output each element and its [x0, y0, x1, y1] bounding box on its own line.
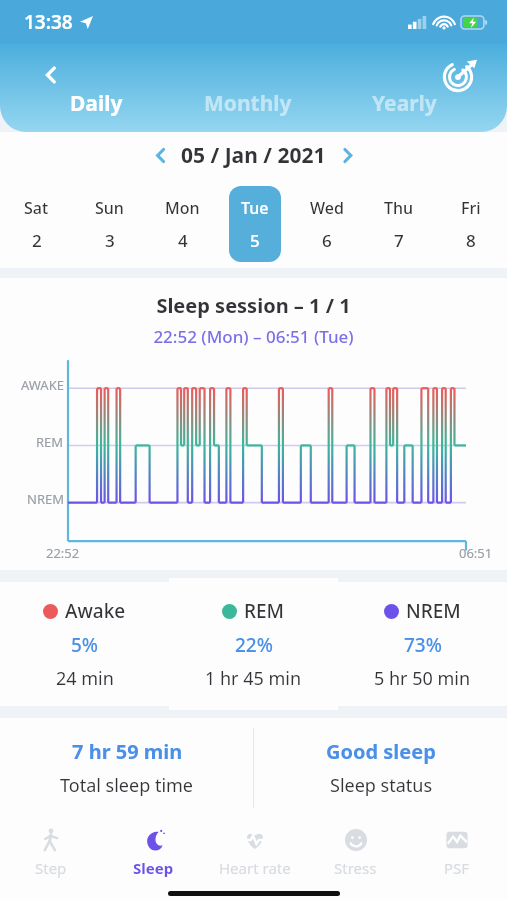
staticText: 8: [466, 229, 476, 252]
staticText: 22:52 (Mon) – 06:51 (Tue): [0, 325, 507, 348]
staticText: Tue: [241, 197, 269, 219]
staticText: 13:38: [24, 9, 73, 35]
button[interactable]: Stress: [305, 818, 406, 886]
staticText: 7 hr 59 min: [72, 738, 183, 765]
staticText: PSF: [444, 858, 470, 878]
staticText: Fri: [461, 197, 481, 219]
button[interactable]: Next day: [332, 140, 362, 170]
button[interactable]: Mon: [156, 186, 209, 262]
button[interactable]: Tue: [229, 186, 281, 262]
staticText: 06:51: [459, 544, 493, 562]
staticText: 6: [322, 229, 332, 252]
staticText: Sleep session – 1 / 1: [0, 292, 507, 319]
staticText: Step: [35, 858, 67, 878]
button[interactable]: Sat: [10, 186, 63, 262]
staticText: NREM: [27, 490, 64, 508]
staticText: 7: [394, 229, 404, 252]
staticText: 5 hr 50 min: [374, 666, 471, 691]
staticText: 24 min: [56, 666, 114, 691]
button[interactable]: Good sleep: [254, 718, 507, 818]
staticText: Mon: [165, 197, 200, 219]
button[interactable]: PSF: [406, 818, 507, 886]
staticText: 05 / Jan / 2021: [181, 141, 326, 170]
button[interactable]: Back: [34, 58, 68, 92]
button[interactable]: Sun: [83, 186, 136, 262]
staticText: 4: [178, 229, 188, 252]
staticText: Yearly: [372, 89, 437, 118]
staticText: Monthly: [204, 89, 292, 118]
staticText: Awake: [65, 598, 126, 624]
staticText: Heart rate: [219, 858, 291, 878]
staticText: Sat: [24, 197, 49, 219]
button[interactable]: Awake: [0, 582, 169, 706]
button[interactable]: Step: [0, 818, 102, 886]
staticText: 22:52: [46, 544, 80, 562]
staticText: Good sleep: [326, 738, 436, 765]
staticText: Stress: [334, 858, 377, 878]
staticText: Wed: [310, 197, 344, 219]
button[interactable]: Monthly: [194, 87, 302, 120]
button[interactable]: Yearly: [362, 87, 447, 120]
staticText: 1 hr 45 min: [205, 666, 302, 691]
staticText: AWAKE: [21, 376, 64, 394]
staticText: NREM: [406, 598, 461, 624]
staticText: 5%: [71, 632, 99, 658]
button[interactable]: Fri: [445, 186, 497, 262]
staticText: Sleep: [133, 858, 174, 878]
button[interactable]: Goal: [439, 54, 481, 96]
staticText: Sun: [95, 197, 124, 219]
button[interactable]: Daily: [60, 87, 133, 120]
staticText: Thu: [384, 197, 414, 219]
button[interactable]: REM: [169, 578, 338, 710]
staticText: Daily: [70, 89, 123, 118]
staticText: REM: [36, 433, 64, 451]
button[interactable]: Sleep: [102, 818, 204, 886]
staticText: Sleep status: [330, 773, 433, 798]
staticText: 2: [32, 229, 42, 252]
button[interactable]: Thu: [373, 186, 425, 262]
button[interactable]: Previous day: [145, 140, 175, 170]
staticText: Total sleep time: [60, 773, 194, 798]
staticText: 5: [250, 229, 260, 252]
button[interactable]: 7 hr 59 min: [0, 718, 253, 818]
staticText: 73%: [404, 632, 442, 658]
staticText: 22%: [235, 632, 273, 658]
staticText: REM: [244, 598, 285, 624]
button[interactable]: NREM: [338, 582, 507, 706]
staticText: 3: [105, 229, 115, 252]
button[interactable]: Heart rate: [204, 818, 305, 886]
button[interactable]: Wed: [301, 186, 353, 262]
